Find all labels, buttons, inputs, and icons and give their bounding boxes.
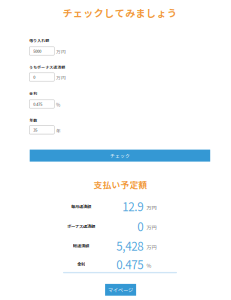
staticText: 0.475 bbox=[116, 256, 143, 272]
staticText: % bbox=[56, 101, 60, 108]
staticText: 12.9 bbox=[122, 198, 143, 215]
staticText: 支払い予定額 bbox=[94, 178, 148, 191]
staticText: 35 bbox=[33, 127, 37, 133]
staticText: 万円 bbox=[146, 204, 156, 211]
staticText: 5,428 bbox=[116, 237, 143, 254]
staticText: うちボーナス返済額 bbox=[29, 64, 65, 70]
staticText: 金利 bbox=[29, 90, 37, 96]
staticText: 総返済額 bbox=[73, 243, 89, 249]
staticText: 万円 bbox=[146, 224, 156, 231]
staticText: マイページ bbox=[108, 286, 133, 293]
button[interactable]: チェック bbox=[30, 150, 210, 162]
staticText: チェックしてみましょう bbox=[62, 5, 177, 20]
button[interactable]: マイページ bbox=[105, 284, 136, 296]
staticText: 毎月返済額 bbox=[71, 203, 91, 209]
staticText: ボーナス返済額 bbox=[67, 223, 95, 229]
staticText: 借り入れ額 bbox=[29, 37, 49, 43]
staticText: % bbox=[146, 262, 151, 269]
staticText: 万円 bbox=[56, 48, 66, 55]
staticText: 万円 bbox=[146, 243, 156, 251]
staticText: 年 bbox=[56, 127, 61, 134]
staticText: 5000 bbox=[33, 48, 41, 54]
staticText: 年数 bbox=[29, 117, 37, 123]
staticText: チェック bbox=[110, 152, 130, 159]
staticText: 0 bbox=[33, 74, 35, 80]
staticText: 0 bbox=[137, 218, 143, 234]
staticText: 万円 bbox=[56, 74, 66, 81]
staticText: 金利 bbox=[77, 261, 85, 267]
staticText: 0.475 bbox=[33, 101, 42, 107]
